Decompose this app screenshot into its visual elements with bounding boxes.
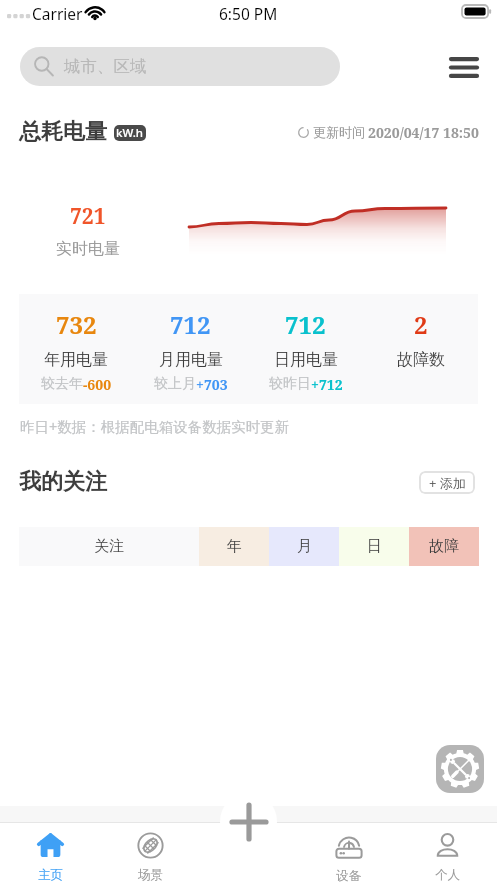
staticText: 日用电量 [274, 350, 338, 370]
staticText: 故障 [429, 537, 459, 556]
staticText: 故障数 [397, 350, 445, 370]
staticText: 2020/04/17 18:50 [368, 123, 479, 142]
staticText: +703 [196, 375, 228, 394]
staticText: 我的关注 [19, 468, 107, 496]
button[interactable]: 个人 [398, 832, 497, 883]
staticText: 较上月 [154, 375, 196, 393]
button[interactable]: + 添加 [419, 471, 475, 494]
button[interactable]: 712 [133, 294, 248, 394]
staticText: 主页 [38, 867, 63, 883]
button[interactable]: Settings [436, 745, 484, 793]
button[interactable]: 场景 [100, 832, 200, 883]
staticText: 721 [70, 202, 106, 231]
staticText: 较昨日 [269, 375, 311, 393]
button[interactable]: Menu [443, 49, 485, 86]
staticText: 年 [227, 537, 242, 556]
staticText: 日 [367, 537, 382, 556]
staticText: 年用电量 [44, 350, 108, 370]
button[interactable]: 732 [19, 294, 133, 394]
staticText: 较去年 [41, 375, 83, 393]
staticText: 场景 [138, 867, 163, 883]
staticText: 总耗电量 [19, 118, 107, 146]
button[interactable]: 故障 [409, 527, 479, 566]
staticText: +712 [311, 375, 343, 394]
staticText: 2 [414, 308, 428, 341]
staticText: 城市、区域 [64, 56, 147, 77]
staticText: 月用电量 [159, 350, 223, 370]
button[interactable]: 2 [363, 294, 478, 375]
staticText: 712 [170, 308, 211, 341]
staticText: -600 [83, 375, 112, 394]
staticText: 6:50 PM [219, 3, 278, 24]
button[interactable]: 主页 [0, 832, 100, 883]
staticText: + 添加 [429, 474, 466, 492]
staticText: 昨日+数据：根据配电箱设备数据实时更新 [20, 416, 290, 436]
staticText: 月 [297, 537, 312, 556]
button[interactable]: 城市、区域 [20, 47, 340, 86]
button[interactable]: 设备 [299, 832, 398, 883]
staticText: kW.h [116, 125, 144, 141]
button[interactable]: 日 [339, 527, 409, 566]
staticText: 更新时间 [313, 124, 365, 140]
staticText: 732 [56, 308, 97, 341]
button[interactable]: 712 [248, 294, 363, 394]
staticText: Carrier [32, 3, 83, 24]
staticText: 712 [285, 308, 326, 341]
staticText: 个人 [435, 867, 460, 883]
button[interactable]: 月 [269, 527, 339, 566]
button[interactable]: Add [220, 793, 277, 850]
staticText: 关注 [94, 537, 124, 556]
staticText: 实时电量 [56, 239, 120, 259]
staticText: 设备 [336, 868, 361, 883]
button[interactable]: 年 [199, 527, 269, 566]
button[interactable]: 关注 [19, 527, 199, 566]
